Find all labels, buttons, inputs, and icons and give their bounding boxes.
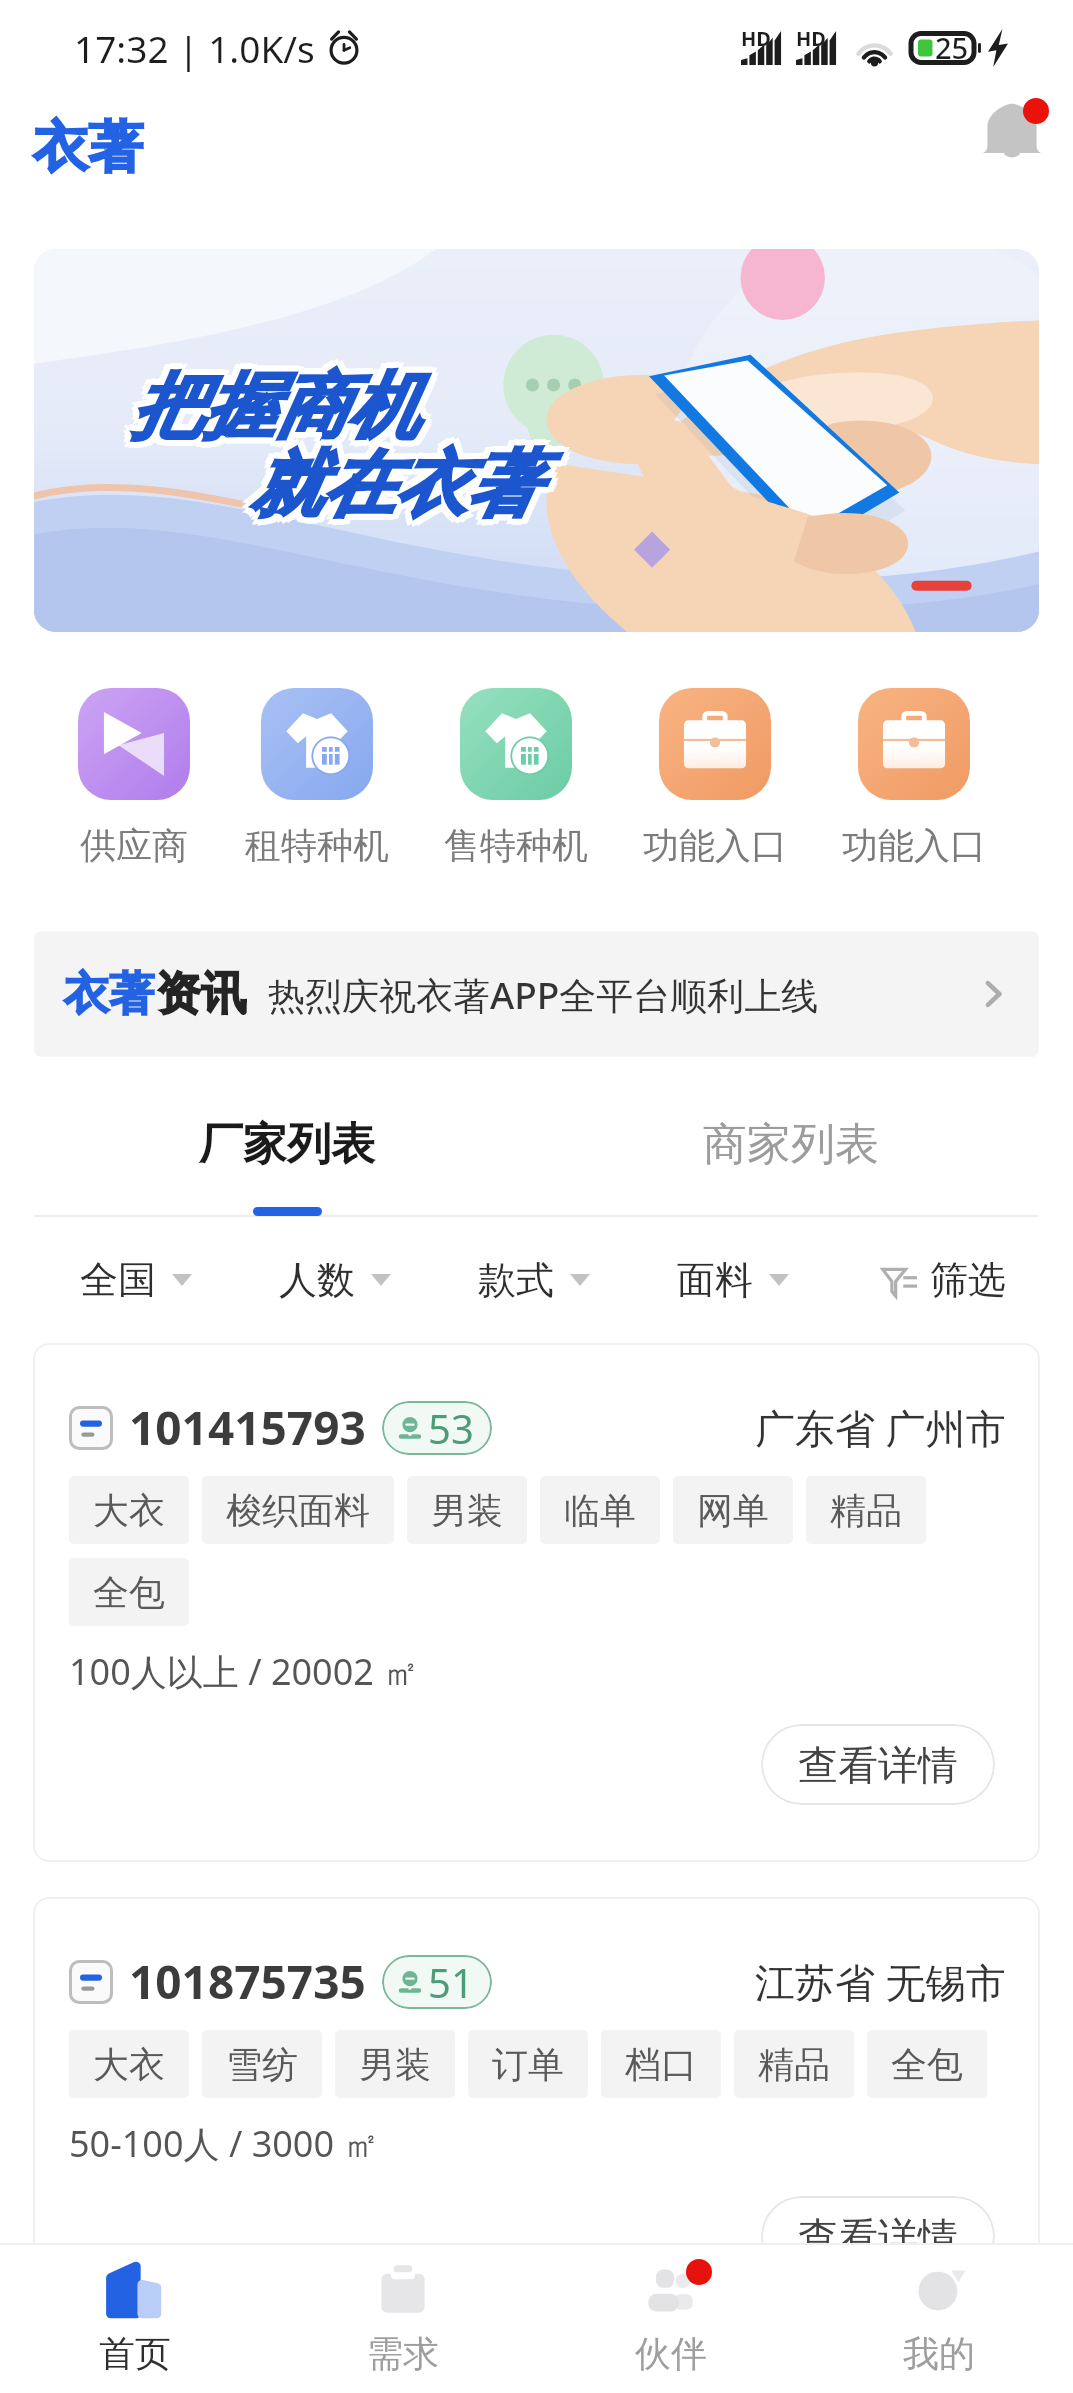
staticText: 筛选	[930, 1256, 1006, 1304]
staticText: 人数	[279, 1256, 355, 1304]
staticText: 男装	[359, 2042, 431, 2087]
button[interactable]: 全国	[80, 1217, 279, 1343]
button[interactable]: 首页	[0, 2245, 269, 2393]
staticText: 资讯	[156, 966, 246, 1023]
button[interactable]: 查看详情	[761, 2196, 995, 2277]
staticText: 大衣	[93, 2042, 165, 2087]
staticText: 51	[428, 1955, 474, 2009]
staticText: 我的	[903, 2331, 975, 2376]
staticText: 就在衣著	[250, 446, 538, 537]
staticText: 101415793	[129, 1396, 366, 1459]
staticText: 订单	[492, 2042, 564, 2087]
staticText: 查看详情	[798, 2212, 958, 2262]
button[interactable]: 衣著	[34, 931, 1039, 1057]
staticText: HD	[796, 25, 826, 52]
staticText: 大衣	[93, 1488, 165, 1533]
staticText: 就在衣著	[250, 434, 538, 525]
staticText: 梭织面料	[226, 1488, 370, 1533]
staticText: 25	[935, 28, 969, 67]
staticText: 网单	[697, 1488, 769, 1533]
staticText: 商家列表	[703, 1117, 879, 1172]
staticText: 53	[428, 1401, 474, 1455]
staticText: 雪纺	[226, 2042, 298, 2087]
button[interactable]: 101415793	[33, 1343, 1040, 1862]
staticText: 把握商机	[131, 356, 419, 447]
staticText: 全包	[891, 2042, 963, 2087]
staticText: 就在衣著	[255, 435, 543, 526]
button[interactable]: 商家列表	[631, 1087, 951, 1217]
staticText: 厂家列表	[199, 1117, 375, 1172]
staticText: 广东省 广州市	[755, 1400, 1006, 1455]
staticText: HD	[741, 25, 771, 52]
staticText: 100人以上 / 20002 ㎡	[69, 1647, 420, 1696]
button[interactable]: 功能入口	[643, 688, 787, 868]
staticText: 面料	[677, 1256, 753, 1304]
staticText: 50-100人 / 3000 ㎡	[69, 2119, 380, 2168]
button[interactable]: 租特种机	[245, 688, 389, 868]
staticText: 把握商机	[126, 367, 414, 458]
staticText: 就在衣著	[250, 440, 538, 531]
staticText: 把握商机	[126, 357, 414, 448]
button[interactable]: 伙伴	[537, 2245, 805, 2393]
staticText: 就在衣著	[244, 440, 532, 531]
staticText: 就在衣著	[256, 440, 544, 531]
staticText: 首页	[99, 2331, 171, 2376]
staticText: 衣著	[33, 113, 143, 182]
button[interactable]: 售特种机	[444, 688, 588, 868]
staticText: 衣著	[64, 966, 154, 1023]
staticText: 17:32 | 1.0K/s	[74, 23, 315, 73]
button[interactable]: 供应商	[78, 688, 190, 868]
button[interactable]: 我的	[805, 2245, 1073, 2393]
staticText: 全国	[80, 1256, 156, 1304]
button[interactable]: 厂家列表	[127, 1087, 447, 1217]
staticText: 热烈庆祝衣著APP全平台顺利上线	[268, 969, 819, 1020]
staticText: 款式	[478, 1256, 554, 1304]
staticText: 男装	[431, 1488, 503, 1533]
staticText: 把握商机	[136, 367, 424, 458]
staticText: 需求	[367, 2331, 439, 2376]
button[interactable]: 款式	[478, 1217, 677, 1343]
staticText: 江苏省 无锡市	[755, 1954, 1006, 2009]
button[interactable]: 面料	[677, 1217, 876, 1343]
staticText: 临单	[564, 1488, 636, 1533]
staticText: 把握商机	[137, 362, 425, 453]
staticText: 伙伴	[635, 2331, 707, 2376]
button[interactable]: 101875735	[33, 1897, 1040, 2334]
staticText: 全包	[93, 1570, 165, 1615]
button[interactable]: 功能入口	[842, 688, 986, 868]
staticText: 就在衣著	[245, 435, 533, 526]
staticText: 档口	[625, 2042, 697, 2087]
staticText: 101875735	[129, 1950, 366, 2013]
button[interactable]: 需求	[269, 2245, 537, 2393]
staticText: 把握商机	[125, 362, 413, 453]
staticText: 精品	[830, 1488, 902, 1533]
button[interactable]: 把握商机	[34, 249, 1039, 632]
staticText: 精品	[758, 2042, 830, 2087]
staticText: 售特种机	[444, 823, 588, 868]
staticText: 把握商机	[136, 357, 424, 448]
staticText: 把握商机	[131, 368, 419, 459]
button[interactable]: Notifications	[973, 98, 1051, 176]
staticText: 供应商	[80, 823, 188, 868]
button[interactable]: 筛选	[876, 1217, 1006, 1343]
button[interactable]: 查看详情	[761, 1724, 995, 1805]
staticText: 租特种机	[245, 823, 389, 868]
staticText: 把握商机	[131, 362, 419, 453]
staticText: 就在衣著	[255, 445, 543, 536]
staticText: 功能入口	[643, 823, 787, 868]
staticText: 查看详情	[798, 1740, 958, 1790]
staticText: 就在衣著	[245, 445, 533, 536]
staticText: 功能入口	[842, 823, 986, 868]
button[interactable]: 人数	[279, 1217, 478, 1343]
